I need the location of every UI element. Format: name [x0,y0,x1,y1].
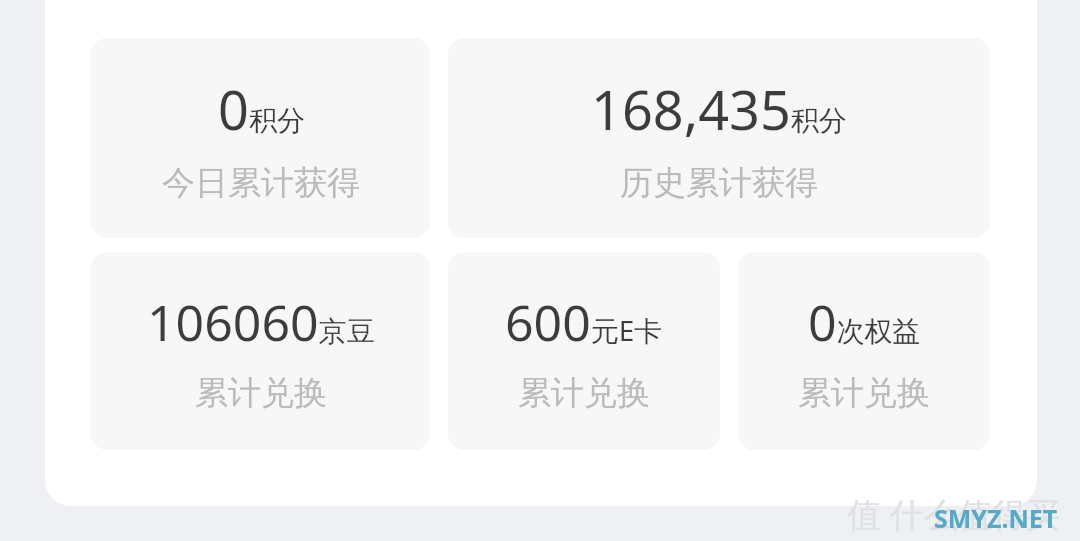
staticText: 累计兑换 [518,372,650,414]
button[interactable]: 0积分 [91,38,430,238]
staticText: 106060京豆 [147,288,375,356]
button[interactable]: 168,435积分 [448,38,990,238]
staticText: SMYZ.NET [934,501,1058,535]
staticText: 今日累计获得 [162,162,360,204]
button[interactable]: 0次权益 [738,252,990,450]
staticText: 累计兑换 [798,372,930,414]
staticText: 值 什么值得买 [847,491,1060,537]
staticText: 168,435积分 [591,72,847,146]
staticText: 历史累计获得 [620,162,818,204]
staticText: 600元E卡 [505,288,663,356]
button[interactable]: 600元E卡 [448,252,720,450]
staticText: 0积分 [218,72,305,146]
button[interactable]: 106060京豆 [91,252,430,450]
staticText: 0次权益 [808,288,921,356]
staticText: 累计兑换 [195,372,327,414]
